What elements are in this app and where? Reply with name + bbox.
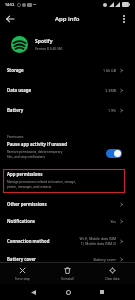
staticText: Battery cover (7, 256, 36, 262)
staticText: Manage permissions related to location, … (7, 180, 76, 189)
staticText: Permissions (7, 135, 24, 139)
button[interactable]: Storage (0, 62, 135, 78)
staticText: Battery cover (93, 257, 116, 262)
staticText: 1.66 GB (102, 68, 116, 73)
staticText: Clear data (105, 277, 120, 281)
staticText: Force stop (15, 277, 30, 281)
button[interactable]: Back (2, 11, 18, 27)
button[interactable]: Notifications (0, 213, 135, 229)
staticText: Remove permissions, delete temporary fil… (7, 150, 63, 159)
staticText: Wi-Fi, Mobile data (SIM 1), Mobile data … (79, 236, 116, 246)
button[interactable]: Clear data (90, 263, 135, 284)
staticText: Storage (7, 67, 24, 73)
staticText: App info (55, 15, 80, 23)
button[interactable]: Pause app activity if unused (0, 141, 135, 165)
staticText: 3.3MB (105, 88, 116, 93)
button[interactable]: Recents (95, 285, 109, 299)
staticText: Other permissions (7, 201, 47, 207)
button[interactable]: Back (26, 285, 40, 299)
staticText: Battery (7, 107, 24, 113)
staticText: 1.9% (107, 108, 116, 113)
button[interactable]: Home (61, 285, 75, 299)
button[interactable]: Force stop (0, 263, 45, 284)
button[interactable]: Battery cover (0, 251, 135, 267)
button[interactable]: More options (116, 11, 132, 27)
staticText: Data usage (7, 87, 32, 93)
staticText: Spotify (35, 38, 53, 45)
staticText: Pause app activity if unused (7, 141, 67, 147)
staticText: Version 8.9.40.560 (35, 47, 63, 51)
button[interactable]: Connection method (0, 233, 135, 249)
staticText: App permissions (7, 171, 43, 177)
button[interactable]: Other permissions (0, 196, 135, 212)
staticText: Yes (110, 219, 116, 224)
button[interactable]: App permissions (3, 169, 125, 193)
staticText: Notifications (7, 218, 35, 224)
staticText: 14:52 (5, 2, 15, 7)
button[interactable]: Uninstall (45, 263, 90, 284)
staticText: Uninstall (61, 277, 74, 281)
button[interactable]: Battery (0, 102, 135, 118)
staticText: Connection method (7, 238, 50, 244)
button[interactable]: Data usage (0, 82, 135, 98)
